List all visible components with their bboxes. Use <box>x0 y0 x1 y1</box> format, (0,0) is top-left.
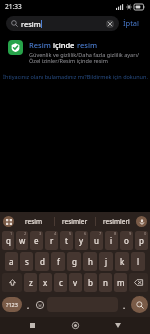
button[interactable]: Home <box>64 317 86 334</box>
button[interactable]: Keyboard menu <box>3 216 14 227</box>
staticText: a <box>9 256 14 267</box>
staticText: resimleri <box>103 217 130 226</box>
button[interactable]: f <box>51 252 65 271</box>
button[interactable]: q <box>2 231 14 250</box>
staticText: resimler <box>62 217 88 226</box>
staticText: 7 <box>99 231 102 236</box>
staticText: u <box>94 235 99 246</box>
staticText: y <box>79 235 84 246</box>
button[interactable]: Shift <box>2 273 22 292</box>
button[interactable]: o <box>120 231 133 250</box>
button[interactable]: İhtiyacınız olanı bulamadınız mı?Bildirm… <box>0 73 150 80</box>
button[interactable]: Resim <box>0 37 150 68</box>
staticText: Güvenlik ve gizlilik/Daha fazla gizlilik… <box>29 51 139 65</box>
staticText: 5 <box>69 231 72 236</box>
button[interactable]: Search <box>6 16 119 31</box>
staticText: w <box>19 235 26 246</box>
staticText: 21:33 <box>5 2 22 11</box>
staticText: , <box>27 300 30 309</box>
button[interactable]: e <box>30 231 43 250</box>
staticText: ?123 <box>6 301 18 308</box>
button[interactable]: Search <box>131 296 148 313</box>
button[interactable]: j <box>99 252 113 271</box>
staticText: l <box>137 256 140 267</box>
staticText: 4 <box>54 231 57 236</box>
staticText: Resim <box>29 40 53 50</box>
button[interactable]: resim <box>14 212 54 230</box>
button[interactable]: z <box>24 273 37 292</box>
staticText: 0 <box>144 231 147 236</box>
button[interactable]: l <box>131 252 145 271</box>
staticText: e <box>34 235 39 246</box>
button[interactable]: t <box>60 231 73 250</box>
staticText: b <box>88 277 93 288</box>
staticText: 2 <box>24 231 27 236</box>
staticText: r <box>50 235 54 246</box>
button[interactable]: b <box>84 273 97 292</box>
button[interactable]: p <box>135 231 148 250</box>
staticText: 1 <box>10 231 13 236</box>
staticText: . <box>123 300 126 309</box>
button[interactable]: Clear <box>106 20 114 28</box>
button[interactable]: i <box>105 231 118 250</box>
button[interactable]: resimler <box>55 212 95 230</box>
button[interactable]: n <box>99 273 112 292</box>
button[interactable]: Back <box>107 317 129 334</box>
button[interactable]: r <box>45 231 58 250</box>
button[interactable]: v <box>69 273 82 292</box>
staticText: t <box>65 235 68 246</box>
button[interactable]: w <box>16 231 28 250</box>
other: Search <box>11 20 18 27</box>
staticText: içinde <box>53 40 77 50</box>
button[interactable]: s <box>20 252 33 271</box>
staticText: m <box>117 277 125 288</box>
button[interactable]: c <box>54 273 67 292</box>
staticText: v <box>73 277 78 288</box>
staticText: 8 <box>114 231 117 236</box>
staticText: z <box>29 277 33 288</box>
staticText: x <box>43 277 48 288</box>
staticText: İhtiyacınız olanı bulamadınız mı?Bildirm… <box>3 73 148 80</box>
button[interactable]: a <box>5 252 18 271</box>
button[interactable]: u <box>90 231 103 250</box>
staticText: q <box>6 235 11 246</box>
button[interactable]: Recents <box>21 317 43 334</box>
staticText: s <box>25 256 29 267</box>
button[interactable]: resimleri <box>96 212 136 230</box>
staticText: p <box>139 235 144 246</box>
staticText: f <box>57 256 60 267</box>
staticText: j <box>105 256 108 267</box>
staticText: k <box>120 256 125 267</box>
staticText: h <box>88 256 93 267</box>
button[interactable]: Emoji <box>34 299 45 310</box>
button[interactable]: h <box>83 252 97 271</box>
staticText: 3 <box>39 231 42 236</box>
button[interactable]: x <box>39 273 52 292</box>
staticText: resim <box>77 40 98 50</box>
button[interactable]: İptal <box>119 16 144 30</box>
button[interactable]: ?123 <box>2 297 22 312</box>
button[interactable]: y <box>75 231 88 250</box>
button[interactable]: d <box>35 252 49 271</box>
button[interactable]: Voice input <box>136 216 147 227</box>
button[interactable]: Comma <box>24 300 33 309</box>
staticText: 6 <box>84 231 87 236</box>
staticText: o <box>124 235 129 246</box>
staticText: resim <box>25 217 43 226</box>
staticText: İptal <box>123 18 140 28</box>
button[interactable]: g <box>67 252 81 271</box>
staticText: 9 <box>129 231 132 236</box>
staticText: d <box>40 256 45 267</box>
button[interactable]: Period <box>120 300 129 309</box>
staticText: c <box>59 277 63 288</box>
staticText: g <box>72 256 77 267</box>
staticText: n <box>103 277 108 288</box>
button[interactable]: Backspace <box>129 273 148 292</box>
staticText: resim <box>21 19 41 29</box>
button[interactable]: k <box>115 252 129 271</box>
button[interactable]: m <box>114 273 127 292</box>
staticText: i <box>110 235 113 246</box>
